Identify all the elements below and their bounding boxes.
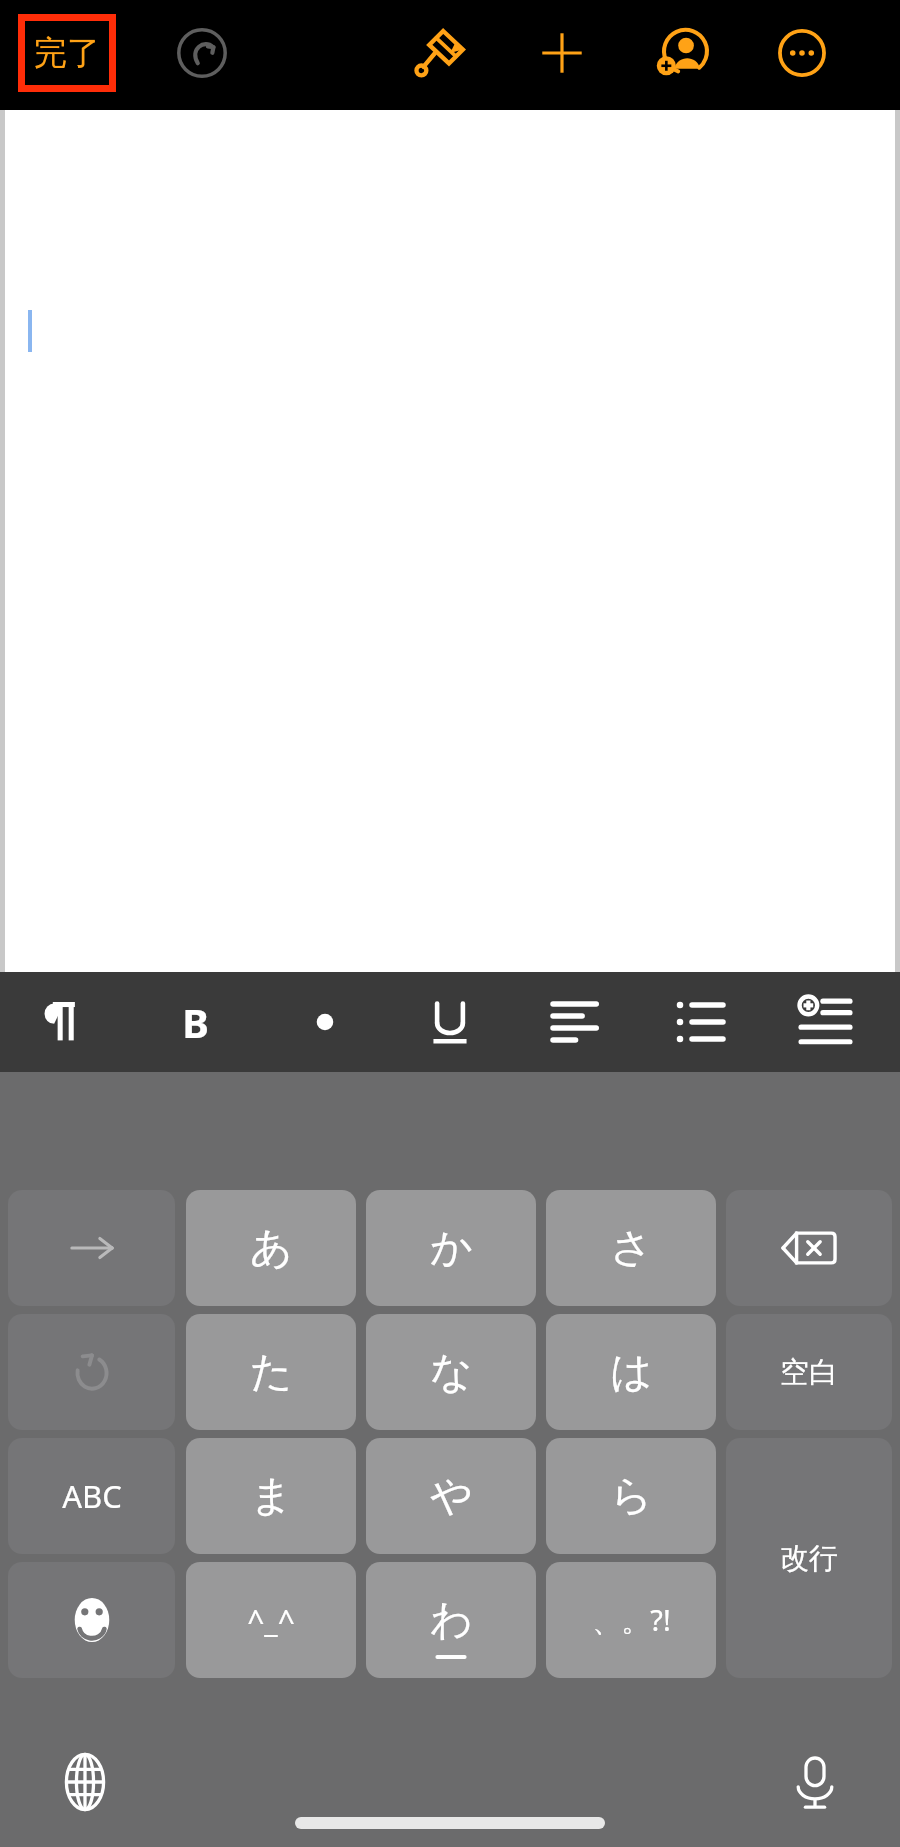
staticText: あ: [250, 1222, 293, 1275]
button[interactable]: た: [186, 1314, 356, 1430]
staticText: た: [250, 1346, 293, 1399]
button[interactable]: 空白: [726, 1314, 892, 1430]
button[interactable]: fn0: [8, 1190, 175, 1306]
button[interactable]: あ: [186, 1190, 356, 1306]
button[interactable]: More: [760, 14, 844, 92]
button[interactable]: Bullet: [269, 984, 381, 1060]
staticText: ^_^: [247, 1600, 295, 1641]
button[interactable]: fn1: [8, 1314, 175, 1430]
button[interactable]: Bulleted list: [644, 984, 756, 1060]
staticText: 完了: [34, 32, 100, 74]
staticText: 空白: [780, 1354, 838, 1391]
staticText: は: [610, 1346, 653, 1399]
staticText: ABC: [62, 1475, 122, 1517]
button[interactable]: Indent list: [769, 984, 881, 1060]
button[interactable]: 、。?!: [546, 1562, 716, 1678]
button[interactable]: や: [366, 1438, 536, 1554]
button[interactable]: ら: [546, 1438, 716, 1554]
staticText: 改行: [780, 1540, 838, 1577]
button[interactable]: Paragraph style: [6, 984, 118, 1060]
staticText: な: [430, 1346, 473, 1399]
button[interactable]: ま: [186, 1438, 356, 1554]
button[interactable]: Brush: [400, 14, 484, 92]
staticText: 、。?!: [592, 1600, 671, 1640]
button[interactable]: Add: [520, 14, 604, 92]
button[interactable]: Backspace: [726, 1190, 892, 1306]
staticText: ま: [250, 1470, 293, 1523]
button[interactable]: 完了: [18, 14, 116, 92]
button[interactable]: Bold: [139, 984, 251, 1060]
staticText: か: [430, 1222, 473, 1275]
button[interactable]: は: [546, 1314, 716, 1430]
staticText: ら: [610, 1470, 653, 1523]
button[interactable]: Undo: [160, 14, 244, 92]
button[interactable]: Underline: [394, 984, 506, 1060]
staticText: や: [430, 1470, 473, 1523]
button[interactable]: ^_^: [186, 1562, 356, 1678]
button[interactable]: さ: [546, 1190, 716, 1306]
staticText: わ: [430, 1594, 473, 1647]
button[interactable]: わ: [366, 1562, 536, 1678]
staticText: B: [182, 995, 209, 1049]
button[interactable]: Add person: [640, 14, 724, 92]
button[interactable]: Dictation: [760, 1727, 870, 1837]
button[interactable]: Switch keyboard: [30, 1727, 140, 1837]
button[interactable]: ABC: [8, 1438, 175, 1554]
staticText: さ: [610, 1222, 653, 1275]
button[interactable]: な: [366, 1314, 536, 1430]
button[interactable]: Align left: [519, 984, 631, 1060]
button[interactable]: fn3: [8, 1562, 175, 1678]
button[interactable]: 改行: [726, 1438, 892, 1678]
button[interactable]: か: [366, 1190, 536, 1306]
